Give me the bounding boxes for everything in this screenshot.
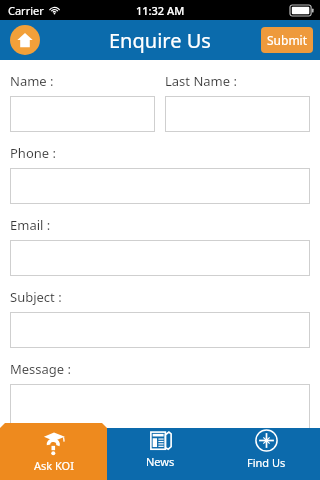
staticText: Ask KOI — [34, 458, 74, 473]
button[interactable]: Text field — [10, 384, 310, 474]
button[interactable]: Ask KOI — [0, 423, 107, 480]
staticText: Find Us — [247, 455, 286, 470]
staticText: Phone : — [10, 144, 56, 162]
staticText: News — [146, 454, 175, 469]
staticText: Email : — [10, 216, 51, 234]
button[interactable]: News — [107, 423, 213, 475]
staticText: Subject : — [10, 288, 62, 306]
button[interactable]: Text field — [10, 312, 310, 348]
button[interactable]: Text field — [10, 168, 310, 204]
staticText: Enquire Us — [109, 27, 211, 54]
staticText: 11:32 AM — [136, 3, 185, 18]
staticText: Name : — [10, 72, 54, 90]
button[interactable]: Submit — [261, 27, 313, 53]
button[interactable]: Text field — [10, 240, 310, 276]
button[interactable]: Text field — [10, 96, 155, 132]
button[interactable]: Text field — [165, 96, 310, 132]
staticText: Carrier — [8, 3, 44, 18]
staticText: Message : — [10, 360, 72, 378]
staticText: Submit — [267, 32, 308, 48]
staticText: Last Name : — [165, 72, 237, 90]
button[interactable]: Home — [10, 25, 40, 55]
button[interactable]: Find Us — [213, 423, 320, 475]
